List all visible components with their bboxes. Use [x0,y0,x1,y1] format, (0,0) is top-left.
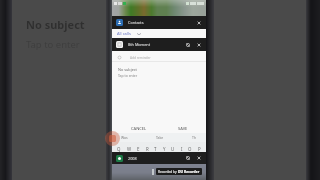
staticText: No subject [26,17,85,32]
button[interactable]: SAVE [178,126,188,131]
button[interactable]: O [188,146,192,152]
button[interactable]: Recorder [105,131,120,146]
staticText: DU Recorder [178,169,200,174]
button[interactable]: Dismiss notification [196,42,202,48]
button[interactable]: Take [156,135,164,140]
button[interactable]: P [198,146,201,152]
button[interactable]: W [127,146,132,152]
button[interactable]: Contacts [112,16,206,29]
button[interactable]: CANCEL [131,126,147,131]
button[interactable]: Was [121,135,128,140]
staticText: No subject [118,67,137,72]
button[interactable]: Mute notification [185,42,191,48]
button[interactable]: Dismiss notification [196,155,202,161]
button[interactable]: Th [192,135,196,140]
button[interactable]: I [181,146,183,152]
button[interactable]: Y [163,146,166,152]
button[interactable]: Q [117,146,121,152]
staticText: All calls [117,31,131,36]
button[interactable]: R [146,146,149,152]
button[interactable]: Dismiss notification [196,20,202,26]
staticText: Tap to enter [26,38,80,51]
staticText: Tap to enter [118,73,138,78]
staticText: Recorded by [158,170,178,174]
button[interactable]: E [137,146,140,152]
button[interactable]: 8th Moment [112,38,206,51]
button[interactable]: Mute notification [185,155,191,161]
staticText: 8th Moment [128,42,151,47]
staticText: 2008 [128,156,137,161]
button[interactable]: U [171,146,175,152]
button[interactable]: 2008 [112,152,206,164]
button[interactable]: T [154,146,157,152]
staticText: Contacts [128,20,144,25]
staticText: Add reminder [130,56,151,60]
